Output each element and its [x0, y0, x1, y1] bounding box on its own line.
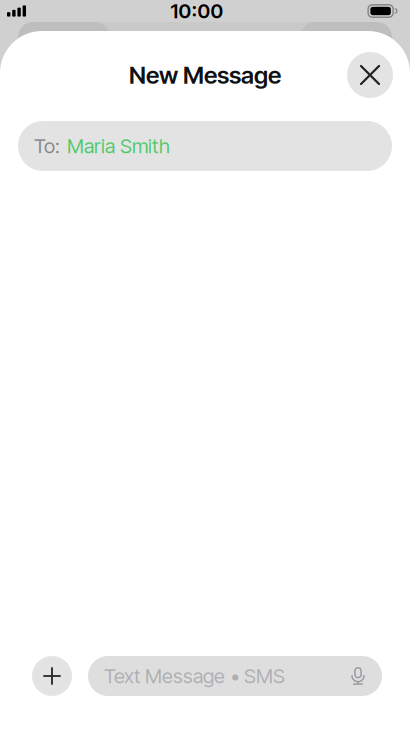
- staticText: New Message: [129, 60, 281, 89]
- staticText: To:: [34, 134, 60, 158]
- button[interactable]: Add attachment: [32, 656, 72, 696]
- staticText: Text Message • SMS: [104, 664, 285, 688]
- button[interactable]: Text Message • SMS: [88, 656, 382, 696]
- staticText: Maria Smith: [67, 134, 170, 158]
- staticText: 10:00: [171, 0, 224, 23]
- button[interactable]: To:: [18, 121, 392, 171]
- button[interactable]: Close: [347, 52, 393, 98]
